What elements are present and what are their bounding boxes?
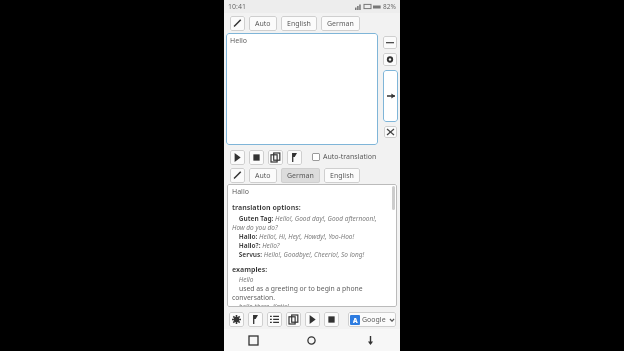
button[interactable]: Play <box>305 312 320 327</box>
button[interactable]: Copy <box>286 312 301 327</box>
staticText: translation options: <box>232 203 301 213</box>
button[interactable]: English <box>324 168 360 183</box>
staticText: English <box>330 171 354 181</box>
staticText: A <box>353 316 358 325</box>
staticText: German <box>327 19 354 29</box>
button[interactable]: A <box>348 312 396 327</box>
button[interactable]: Back <box>341 329 400 351</box>
staticText: Hello <box>230 36 247 46</box>
button[interactable]: Hallo <box>227 184 397 307</box>
staticText: Servus: Hello!, Goodbye!, Cheerio!, So l… <box>232 250 365 259</box>
button[interactable]: Clear text <box>383 53 397 66</box>
button[interactable]: Auto <box>249 16 277 31</box>
button[interactable]: More options <box>383 36 397 49</box>
button[interactable]: Auto <box>249 168 277 183</box>
button[interactable]: Recents <box>224 329 282 351</box>
button[interactable]: German <box>281 168 320 183</box>
button[interactable]: Translate <box>383 70 398 122</box>
staticText: Google <box>362 315 386 325</box>
button[interactable]: Flag <box>248 312 263 327</box>
staticText: Hallo <box>232 187 249 197</box>
staticText: English <box>287 19 311 29</box>
staticText: German <box>287 171 314 181</box>
staticText: 10:41 <box>228 2 246 12</box>
staticText: Hello <box>232 275 254 284</box>
button[interactable]: Edit <box>230 16 245 31</box>
staticText: Hallo: Hello!, Hi, Hey!, Howdy!, Yoo-Hoo… <box>232 232 355 241</box>
staticText: Auto-translation <box>323 152 377 162</box>
staticText: Auto <box>255 19 271 29</box>
button[interactable]: Copy <box>268 150 283 165</box>
staticText: 82% <box>383 2 396 11</box>
button[interactable]: Settings <box>229 312 244 327</box>
button[interactable]: Hello <box>226 33 378 145</box>
button[interactable]: Stop <box>324 312 339 327</box>
staticText: Auto <box>255 171 271 181</box>
button[interactable]: List <box>267 312 282 327</box>
staticText: used as a greeting or to begin a phone c… <box>232 284 389 302</box>
staticText: hello there, Katie! <box>232 302 289 307</box>
button[interactable]: Close <box>384 126 397 138</box>
button[interactable]: Flag <box>287 150 302 165</box>
button[interactable]: Stop <box>249 150 264 165</box>
staticText: Guten Tag: Hello!, Good day!, Good after… <box>232 214 389 232</box>
button[interactable]: Auto-translation <box>312 152 377 162</box>
button[interactable]: German <box>321 16 360 31</box>
button[interactable]: English <box>281 16 317 31</box>
button[interactable]: Home <box>282 329 341 351</box>
button[interactable]: Edit target <box>230 168 245 183</box>
staticText: Hallo?: Hello? <box>232 241 280 250</box>
button[interactable]: Play <box>230 150 245 165</box>
staticText: examples: <box>232 265 268 275</box>
